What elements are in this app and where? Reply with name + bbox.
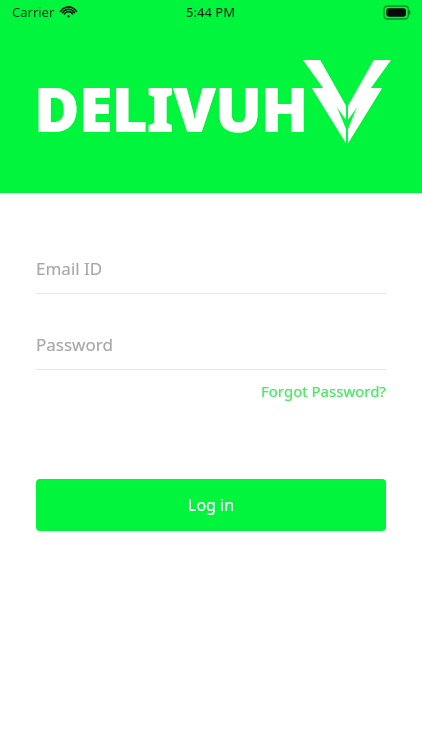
staticText: Forgot Password? [261, 381, 386, 401]
staticText: Email ID [36, 257, 103, 280]
staticText: Log in [188, 494, 235, 516]
staticText: Carrier [12, 3, 55, 21]
button[interactable]: Email ID [36, 255, 386, 294]
staticText: DELIVUH [34, 66, 308, 150]
button[interactable]: Forgot Password? [36, 381, 386, 401]
staticText: 5:44 PM [186, 3, 236, 21]
button[interactable]: Log in [36, 479, 386, 531]
staticText: Password [36, 333, 113, 356]
button[interactable]: Password [36, 331, 386, 370]
